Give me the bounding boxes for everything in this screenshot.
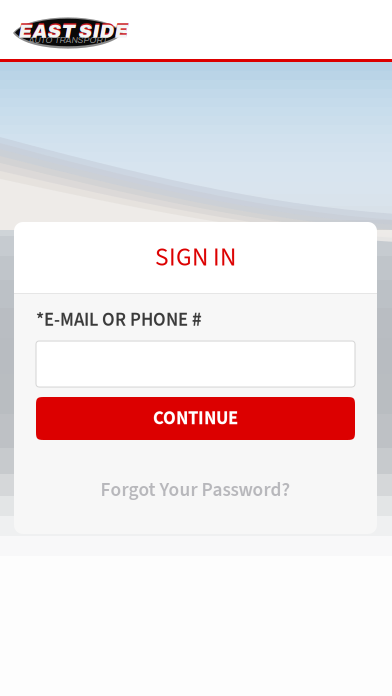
button[interactable]: CONTINUE	[36, 397, 355, 440]
staticText: *E-MAIL OR PHONE #	[36, 307, 202, 333]
staticText: AUTO TRANSPORT	[28, 35, 107, 45]
staticText: EAST SIDE	[18, 21, 128, 42]
staticText: SIGN IN	[155, 239, 236, 276]
staticText: Forgot Your Password?	[100, 476, 290, 504]
staticText: CONTINUE	[153, 405, 238, 432]
button[interactable]: Forgot Your Password?	[36, 474, 355, 506]
staticText: EAST SIDE	[18, 20, 128, 40]
